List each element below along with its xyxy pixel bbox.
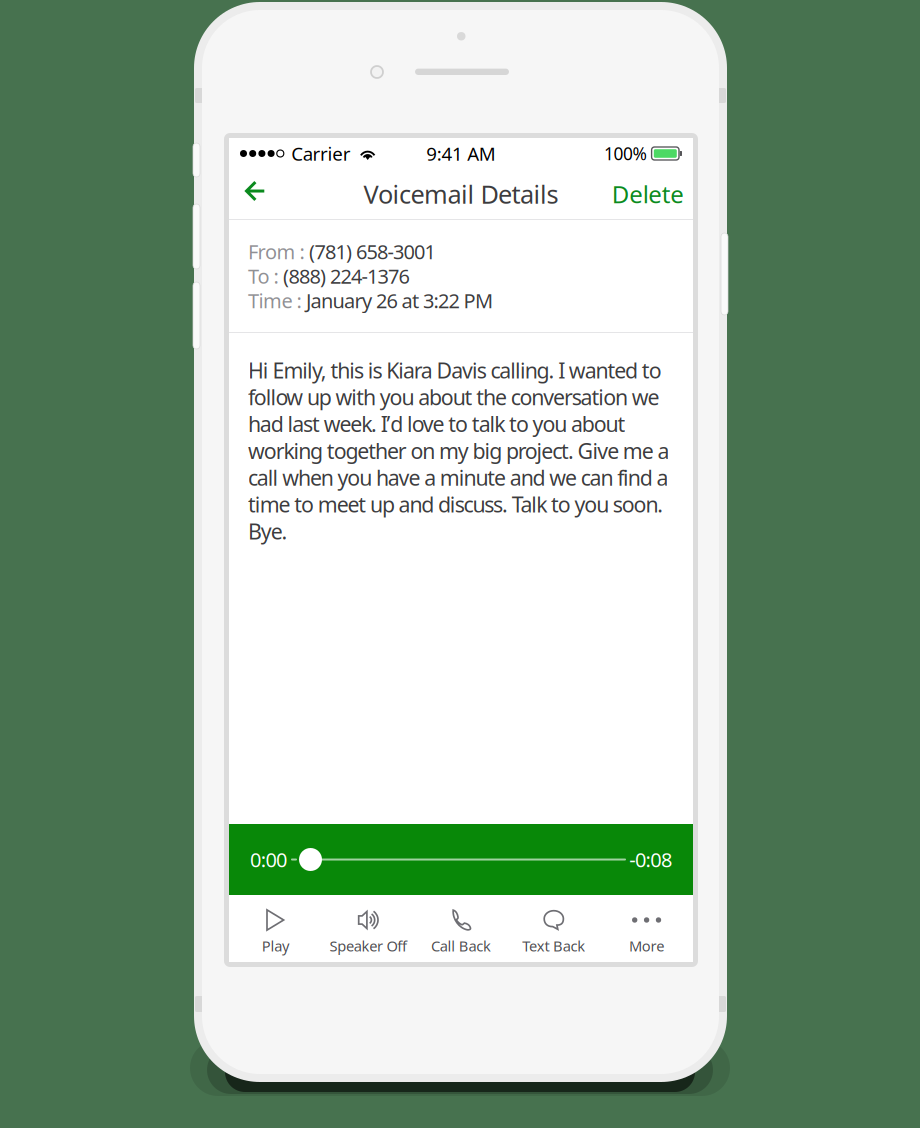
staticText: Time :	[248, 287, 306, 314]
button[interactable]: Delete	[603, 169, 693, 219]
button[interactable]: Speaker Off	[322, 895, 415, 962]
staticText: Text Back	[522, 936, 585, 955]
button[interactable]: More	[600, 895, 693, 962]
staticText: -0:08	[629, 846, 672, 873]
staticText: Play	[262, 936, 289, 955]
button[interactable]: Play	[229, 895, 322, 962]
staticText: Voicemail Details	[363, 177, 558, 211]
staticText: To :	[248, 263, 283, 289]
staticText: January 26 at 3:22 PM	[306, 287, 493, 314]
button[interactable]: Text Back	[507, 895, 600, 962]
staticText: More	[629, 936, 664, 955]
staticText: Delete	[612, 178, 684, 210]
staticText: (888) 224-1376	[283, 263, 409, 289]
button[interactable]: Call Back	[415, 895, 507, 962]
button[interactable]: Back	[229, 169, 291, 219]
staticText: (781) 658-3001	[309, 238, 435, 265]
staticText: Hi Emily, this is Kiara Davis calling. I…	[248, 356, 669, 545]
staticText: 0:00	[250, 846, 287, 873]
staticText: 9:41 AM	[426, 141, 496, 166]
staticText: 100%	[604, 142, 647, 165]
staticText: Speaker Off	[329, 936, 407, 955]
staticText: Carrier	[291, 141, 351, 166]
staticText: From :	[248, 238, 309, 265]
staticText: Call Back	[431, 936, 491, 955]
